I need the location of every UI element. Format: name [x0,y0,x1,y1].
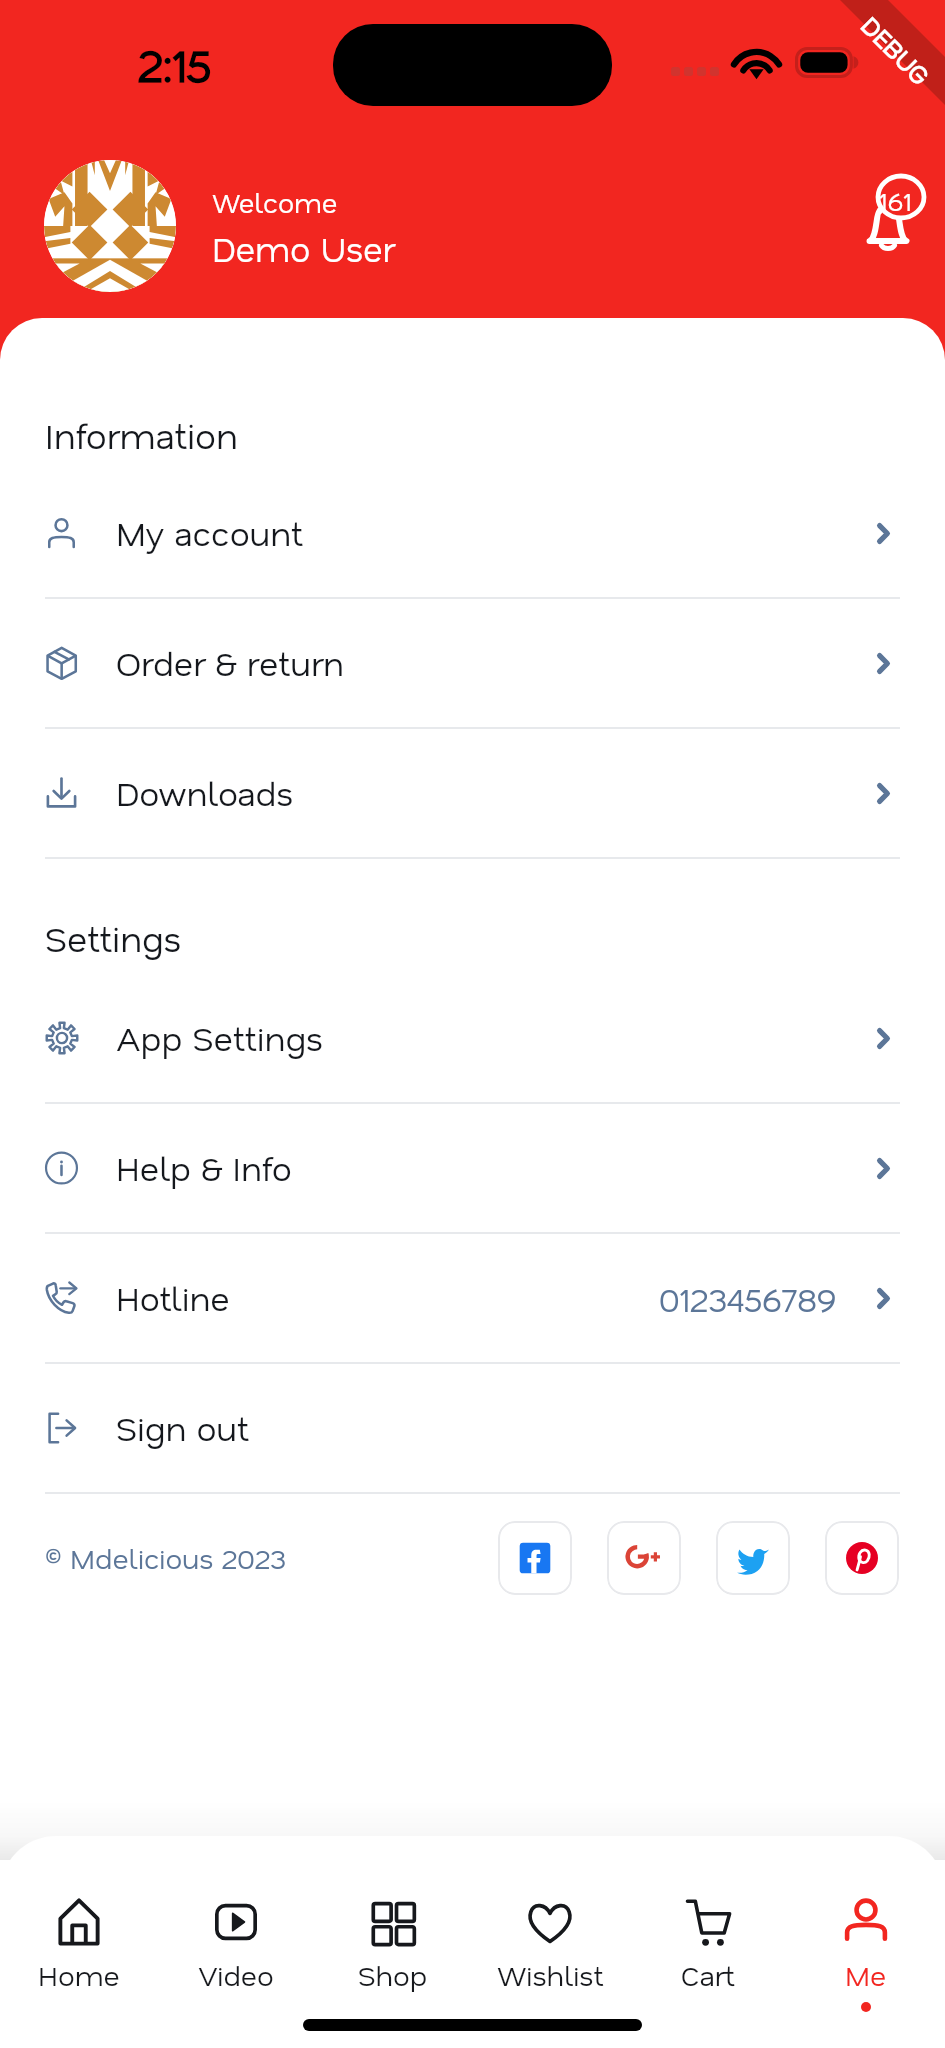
staticText: My account [116,511,303,555]
staticText: Welcome [212,185,338,220]
staticText: 0123456789 [659,1277,838,1320]
staticText: Downloads [116,771,294,815]
button[interactable]: App Settings [0,974,945,1102]
button[interactable]: Video [157,1896,314,1993]
button[interactable]: Notifications [815,162,923,258]
staticText: Settings [45,915,182,961]
button[interactable]: Google Plus [607,1521,681,1595]
button[interactable]: Me [787,1896,945,2012]
button[interactable]: Cart [629,1896,787,1993]
staticText: Help & Info [116,1146,292,1190]
button[interactable]: Order & return [0,599,945,727]
button[interactable]: Wishlist [471,1896,629,1993]
button[interactable]: Shop [314,1896,471,1993]
staticText: App Settings [116,1016,323,1060]
staticText: Home [38,1957,120,1993]
staticText: 2:15 [138,35,211,93]
button[interactable]: Help & Info [0,1104,945,1232]
staticText: Order & return [116,641,344,685]
button[interactable]: Home [0,1896,157,1993]
button[interactable]: Hotline [0,1234,945,1362]
button[interactable]: Twitter [716,1521,790,1595]
button[interactable]: My account [0,469,945,597]
button[interactable]: Pinterest [825,1521,899,1595]
staticText: DEBUG [855,9,937,91]
button[interactable]: Facebook [498,1521,572,1595]
staticText: Cart [681,1957,735,1993]
staticText: Sign out [116,1406,249,1450]
staticText: 161 [879,184,912,218]
staticText: Me [845,1957,887,1993]
staticText: © Mdelicious 2023 [45,1540,287,1576]
button[interactable]: Downloads [0,729,945,857]
staticText: Wishlist [497,1957,604,1993]
staticText: Shop [358,1957,428,1993]
staticText: Information [45,412,238,458]
staticText: Demo User [212,226,395,270]
staticText: Hotline [116,1276,230,1320]
staticText: Video [198,1957,274,1993]
button[interactable]: Sign out [0,1364,945,1492]
